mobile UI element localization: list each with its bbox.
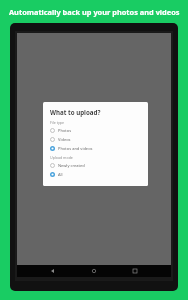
staticText: Videos [58, 137, 71, 142]
button[interactable]: Back [48, 266, 58, 276]
staticText: Upload mode [50, 155, 73, 160]
button[interactable]: Home [89, 266, 99, 276]
staticText: Automatically back up your photos and vi… [9, 7, 180, 17]
staticText: What to upload? [50, 108, 101, 116]
staticText: Photos and videos [58, 146, 93, 151]
button[interactable]: All [50, 172, 141, 177]
button[interactable]: Recent apps [130, 266, 140, 276]
staticText: All [58, 172, 63, 177]
button[interactable]: Photos and videos [50, 146, 141, 151]
staticText: File type [50, 120, 65, 125]
button[interactable]: Newly created [50, 163, 141, 168]
button[interactable]: Videos [50, 137, 141, 142]
staticText: Newly created [58, 163, 85, 168]
staticText: Photos [58, 128, 72, 133]
button[interactable]: Photos [50, 128, 141, 133]
